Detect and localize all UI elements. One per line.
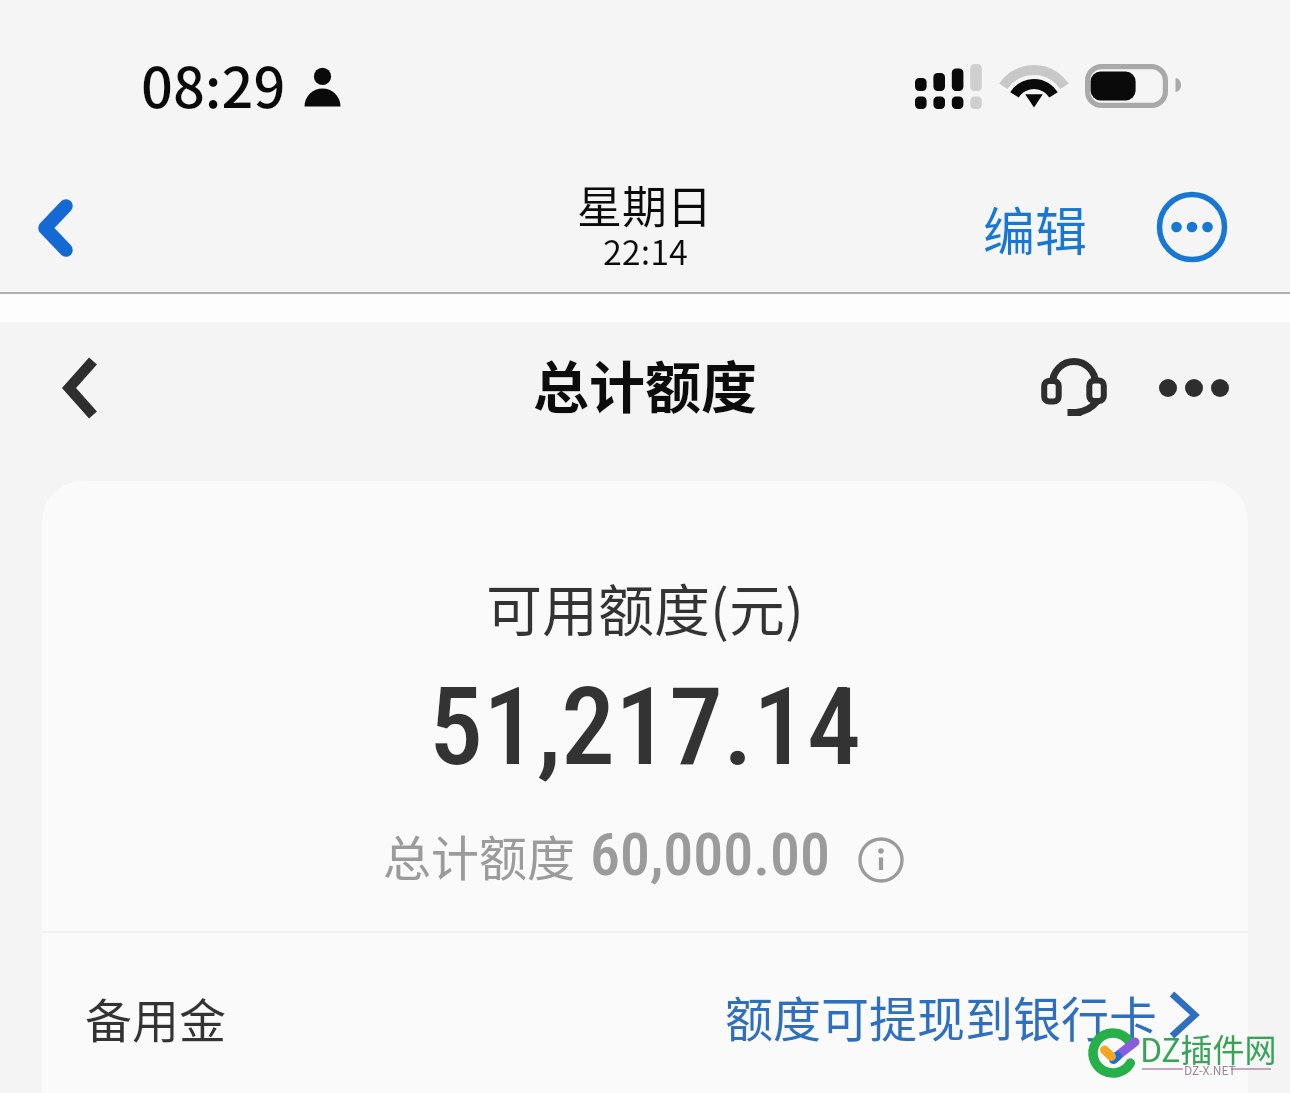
staticText: 编辑 — [983, 191, 1088, 266]
staticText: 22:14 — [603, 226, 688, 275]
button[interactable]: Customer service — [1028, 345, 1120, 433]
button[interactable]: More options — [1148, 183, 1236, 271]
button[interactable]: 备用金 — [42, 934, 1248, 1093]
staticText: 星期日 — [577, 172, 713, 237]
staticText: 可用额度(元) — [42, 566, 1248, 647]
staticText: DZ插件网 — [1140, 1025, 1277, 1071]
button[interactable]: Credit limit details — [859, 838, 903, 882]
staticText: 备用金 — [85, 983, 226, 1051]
staticText: 51,217.14 — [42, 664, 1248, 791]
staticText: 总计额度 — [533, 343, 757, 424]
staticText: 08:29 — [141, 43, 286, 124]
button[interactable]: Back — [16, 186, 100, 270]
button[interactable]: Back — [44, 346, 128, 430]
button[interactable]: More — [1140, 348, 1248, 428]
staticText: 60,000.00 — [590, 819, 831, 889]
staticText: 额度可提现到银行卡 — [725, 981, 1158, 1051]
staticText: DZ-X.NET — [1184, 1061, 1236, 1078]
button[interactable]: 编辑 — [967, 185, 1103, 271]
staticText: 总计额度 — [383, 820, 576, 890]
